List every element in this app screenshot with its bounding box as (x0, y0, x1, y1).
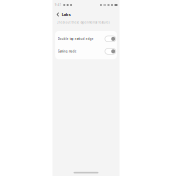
staticText: Labs (62, 12, 71, 17)
button[interactable]: Back (56, 12, 59, 17)
staticText: Gaming mode (58, 50, 77, 53)
button[interactable]: Double tap earbud edge (55, 33, 117, 45)
staticText: Double tap earbud edge (58, 37, 94, 41)
button[interactable]: Gaming mode (55, 45, 117, 58)
staticText: Check out these experimental features (56, 21, 109, 24)
staticText: 9:41 (55, 3, 62, 7)
